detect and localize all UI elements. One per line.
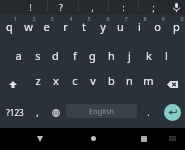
staticText: ;: [152, 2, 155, 13]
staticText: :: [122, 2, 125, 13]
staticText: l: [165, 48, 168, 63]
button[interactable]: x: [46, 66, 65, 94]
staticText: y: [100, 19, 106, 34]
button[interactable]: !: [16, 0, 44, 15]
button[interactable]: 6: [93, 14, 112, 42]
button[interactable]: 0: [167, 14, 185, 42]
staticText: 9: [161, 15, 165, 22]
button[interactable]: 8: [130, 14, 149, 42]
staticText: ,: [36, 106, 39, 118]
staticText: z: [35, 73, 41, 88]
staticText: English: [89, 106, 114, 116]
button[interactable]: b: [102, 66, 121, 94]
button[interactable]: f: [65, 41, 84, 69]
staticText: t: [82, 19, 86, 34]
staticText: m: [143, 73, 154, 88]
staticText: x: [53, 73, 59, 88]
button[interactable]: n: [120, 66, 139, 94]
button[interactable]: 9: [148, 14, 167, 42]
button[interactable]: 1: [0, 14, 19, 42]
staticText: j: [128, 48, 131, 63]
staticText: n: [126, 73, 133, 88]
button[interactable]: Backspace: [158, 70, 185, 98]
button[interactable]: 2: [19, 14, 38, 42]
staticText: ?: [59, 2, 63, 13]
button[interactable]: Voice input: [165, 0, 185, 15]
staticText: e: [43, 19, 50, 34]
staticText: o: [154, 19, 161, 34]
button[interactable]: 3: [37, 14, 56, 42]
staticText: g: [89, 48, 96, 63]
button[interactable]: h: [102, 41, 121, 69]
button[interactable]: ?: [47, 0, 75, 15]
button[interactable]: 5: [74, 14, 93, 42]
staticText: v: [90, 73, 96, 88]
button[interactable]: c: [65, 66, 84, 94]
button[interactable]: j: [120, 41, 139, 69]
button[interactable]: l: [157, 41, 176, 69]
staticText: 2: [32, 15, 36, 22]
staticText: w: [24, 19, 33, 34]
button[interactable]: :: [109, 0, 137, 15]
staticText: k: [146, 48, 152, 63]
button[interactable]: ,: [78, 0, 106, 15]
staticText: 5: [87, 15, 91, 22]
button[interactable]: 4: [56, 14, 75, 42]
staticText: 0: [180, 15, 184, 22]
button[interactable]: Hide keyboard: [28, 128, 52, 149]
button[interactable]: .: [140, 98, 156, 126]
staticText: 4: [69, 15, 73, 22]
button[interactable]: Enter: [164, 104, 181, 121]
button[interactable]: k: [139, 41, 158, 69]
button[interactable]: English: [66, 104, 137, 118]
staticText: 7: [124, 15, 128, 22]
staticText: h: [108, 48, 115, 63]
staticText: 8: [143, 15, 147, 22]
button[interactable]: ?123: [0, 98, 30, 126]
button[interactable]: a: [9, 41, 28, 69]
staticText: p: [173, 19, 180, 34]
staticText: s: [35, 48, 41, 63]
button[interactable]: d: [46, 41, 65, 69]
staticText: !: [29, 2, 32, 13]
staticText: b: [108, 73, 115, 88]
staticText: c: [72, 73, 78, 88]
button[interactable]: Home: [81, 128, 105, 149]
button[interactable]: Change language: [47, 99, 64, 127]
button[interactable]: g: [83, 41, 102, 69]
button[interactable]: 7: [111, 14, 130, 42]
staticText: ,: [91, 2, 94, 13]
staticText: i: [138, 19, 141, 34]
button[interactable]: Recents: [132, 128, 156, 149]
staticText: a: [15, 48, 22, 63]
staticText: 1: [13, 15, 17, 22]
staticText: 3: [50, 15, 54, 22]
button[interactable]: v: [83, 66, 102, 94]
staticText: ?123: [6, 107, 24, 118]
staticText: .: [147, 106, 150, 118]
button[interactable]: ;: [139, 0, 167, 15]
staticText: u: [117, 19, 124, 34]
staticText: r: [63, 19, 68, 34]
staticText: f: [73, 48, 77, 63]
staticText: q: [6, 19, 13, 34]
button[interactable]: s: [28, 41, 47, 69]
staticText: d: [52, 48, 59, 63]
button[interactable]: z: [28, 66, 47, 94]
button[interactable]: m: [139, 66, 158, 94]
button[interactable]: Switch keyboard: [160, 128, 184, 149]
button[interactable]: ,: [29, 98, 45, 126]
button[interactable]: Shift: [0, 70, 27, 98]
staticText: 6: [106, 15, 110, 22]
